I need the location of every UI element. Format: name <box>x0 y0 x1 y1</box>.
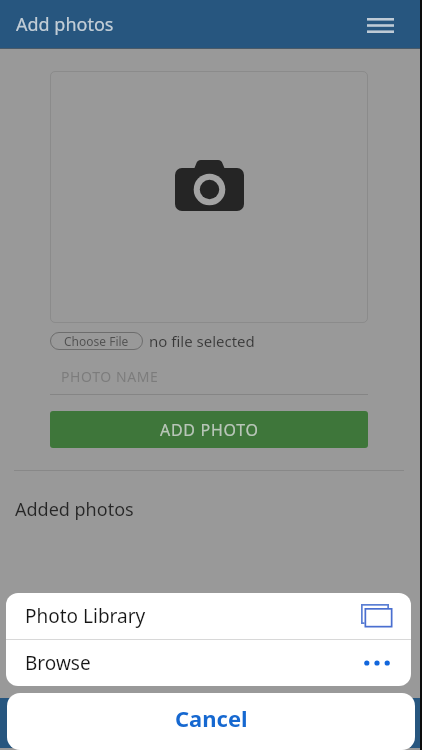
staticText: Cancel <box>175 703 248 733</box>
staticText: Add photos <box>16 12 114 37</box>
button[interactable]: Menu <box>365 10 395 40</box>
staticText: Added photos <box>15 497 134 522</box>
button[interactable]: Photo Library <box>6 593 411 639</box>
button[interactable]: ADD PHOTO <box>50 411 368 448</box>
button[interactable]: Browse <box>6 640 411 686</box>
button[interactable]: Choose File <box>50 332 143 350</box>
staticText: ADD PHOTO <box>160 419 259 441</box>
staticText: PHOTO NAME <box>61 367 159 386</box>
staticText: no file selected <box>149 331 255 351</box>
button[interactable]: Cancel <box>7 693 415 750</box>
staticText: Choose File <box>64 333 129 349</box>
staticText: Browse <box>25 650 91 676</box>
staticText: Photo Library <box>25 603 146 629</box>
